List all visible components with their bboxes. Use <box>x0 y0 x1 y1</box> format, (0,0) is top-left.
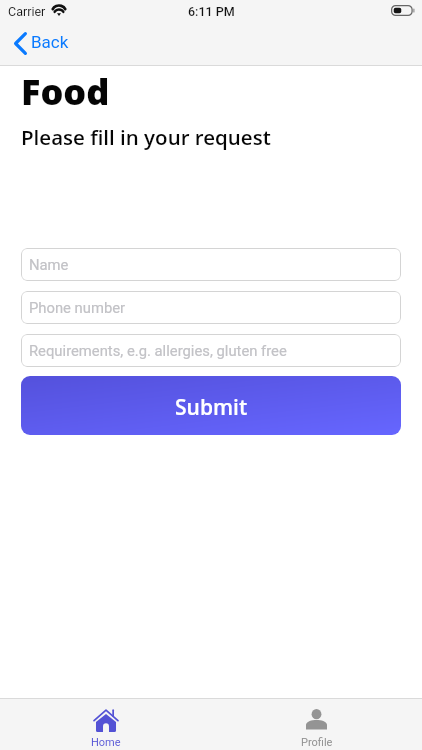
staticText: Food <box>21 67 110 116</box>
staticText: Requirements, e.g. allergies, gluten fre… <box>29 342 287 359</box>
staticText: 6:11 PM <box>188 4 235 19</box>
staticText: Please fill in your request <box>21 123 271 151</box>
staticText: Submit <box>175 393 248 422</box>
button[interactable]: Profile <box>211 699 422 750</box>
button[interactable]: Name <box>21 248 401 281</box>
staticText: Home <box>91 736 121 749</box>
staticText: Back <box>31 32 69 52</box>
button[interactable]: Home <box>0 699 211 750</box>
staticText: Phone number <box>29 299 126 316</box>
other: Back <box>14 32 27 55</box>
staticText: Profile <box>301 736 333 749</box>
button[interactable]: Requirements, e.g. allergies, gluten fre… <box>21 334 401 367</box>
button[interactable]: Phone number <box>21 291 401 324</box>
staticText: Carrier <box>8 4 46 19</box>
button[interactable]: Back <box>6 27 79 58</box>
button[interactable]: Submit <box>21 376 401 435</box>
staticText: Name <box>29 256 69 273</box>
